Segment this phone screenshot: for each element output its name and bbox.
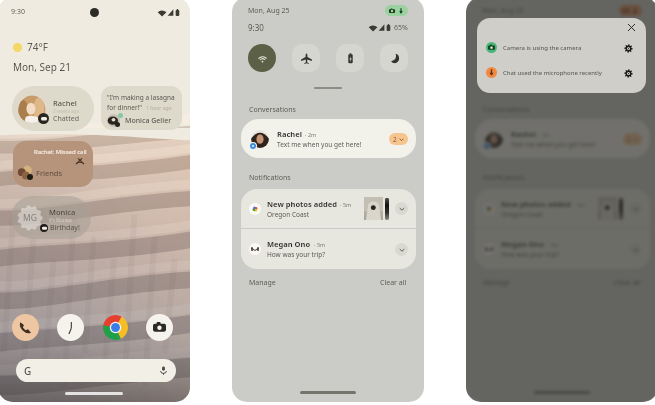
button[interactable]: Clear all [614, 278, 641, 288]
staticText: Mon, Sep 21 [13, 60, 71, 74]
staticText: 2 [393, 135, 397, 144]
button[interactable]: Megan Ono [241, 229, 416, 269]
button[interactable]: New photos added [241, 189, 416, 228]
button[interactable]: Wi-Fi [482, 44, 510, 72]
staticText: Birthday! [50, 223, 80, 233]
staticText: Friends [36, 168, 62, 178]
button[interactable]: Manage [483, 278, 510, 288]
staticText: Rachel: Missed call [34, 148, 87, 156]
button[interactable]: Do not disturb [614, 44, 642, 72]
staticText: for dinner!" [107, 103, 143, 112]
staticText: Mon, Aug 25 [482, 6, 524, 16]
staticText: it's Monica [49, 217, 72, 223]
staticText: Rachel [511, 129, 536, 139]
staticText: 1 hour ago [146, 105, 172, 112]
staticText: Megan Ono [267, 239, 311, 249]
staticText: Text me when you get here! [511, 140, 596, 149]
button[interactable]: "I'm making a lasagna [101, 86, 182, 130]
button[interactable]: Wi-Fi [248, 44, 276, 72]
staticText: Text me when you get here! [277, 140, 362, 149]
button[interactable]: MG [11, 196, 91, 239]
button[interactable]: Rachel [475, 119, 650, 158]
button[interactable]: Screen record and download [389, 5, 404, 16]
button[interactable]: 2 [393, 133, 404, 145]
staticText: Oregon Coast [501, 210, 544, 219]
staticText: Megan Ono [501, 239, 545, 249]
button[interactable]: Chrome [102, 314, 129, 341]
staticText: Monica Geller [125, 116, 172, 126]
staticText: 74°F [27, 40, 48, 54]
button[interactable]: Clock [57, 314, 84, 341]
button[interactable]: Expand [395, 202, 408, 215]
button[interactable]: 2 [627, 133, 638, 145]
staticText: · 5m [340, 201, 352, 208]
staticText: Camera is using the camera [503, 44, 582, 52]
staticText: · 2m [305, 131, 317, 138]
button[interactable]: Battery saver [570, 44, 598, 72]
button[interactable]: Rachel [241, 119, 416, 158]
staticText: 9:30 [11, 7, 25, 17]
button[interactable]: Airplane mode [526, 44, 554, 72]
staticText: New photos added [501, 199, 571, 209]
button[interactable]: Rachel: Missed call [13, 141, 93, 187]
staticText: G [24, 364, 32, 378]
staticText: 2 weeks ago [53, 108, 80, 114]
button[interactable]: Phone [12, 314, 39, 341]
staticText: Conversations [249, 105, 296, 115]
staticText: Conversations [483, 105, 530, 115]
staticText: 9:30 [248, 22, 264, 33]
staticText: Monica [49, 207, 76, 217]
button[interactable]: Screen record and download [623, 5, 638, 16]
staticText: Notifications [483, 173, 525, 183]
button[interactable]: Expand [395, 243, 408, 256]
button[interactable]: Camera is using the camera [477, 35, 646, 60]
button[interactable]: G [16, 359, 176, 382]
staticText: 2 [627, 135, 631, 144]
button[interactable]: Clear all [380, 278, 407, 288]
button[interactable]: New photos added [475, 189, 650, 228]
staticText: Oregon Coast [267, 210, 310, 219]
staticText: Chatted [53, 114, 79, 124]
staticText: Rachel [277, 129, 302, 139]
button[interactable]: Close [625, 21, 637, 33]
staticText: 65% [394, 23, 408, 33]
button[interactable]: Chat used the microphone recently [477, 60, 646, 85]
staticText: 65% [628, 23, 642, 33]
staticText: How was your trip? [501, 250, 560, 259]
staticText: New photos added [267, 199, 337, 209]
staticText: Chat used the microphone recently [503, 69, 602, 77]
button[interactable]: Manage [249, 278, 276, 288]
button[interactable]: Airplane mode [292, 44, 320, 72]
button[interactable]: Battery saver [336, 44, 364, 72]
staticText: Rachel [53, 98, 77, 108]
staticText: "I'm making a lasagna [107, 93, 175, 102]
staticText: How was your trip? [267, 250, 326, 259]
button[interactable]: Settings [621, 66, 635, 80]
staticText: Notifications [249, 173, 291, 183]
button[interactable]: Settings [621, 41, 635, 55]
button[interactable]: Do not disturb [380, 44, 408, 72]
staticText: Mon, Aug 25 [248, 6, 290, 16]
staticText: MG [23, 212, 37, 224]
button[interactable]: Camera [146, 314, 173, 341]
button[interactable]: Rachel [12, 86, 94, 131]
staticText: · 5m [314, 241, 326, 248]
button[interactable]: Megan Ono [475, 229, 650, 269]
